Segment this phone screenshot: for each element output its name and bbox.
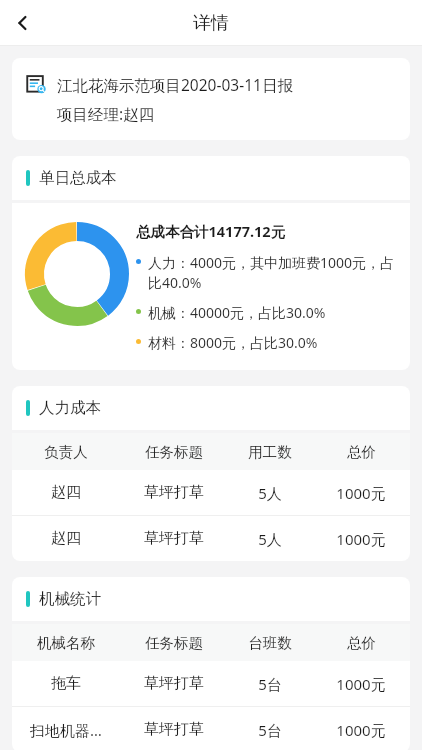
staticText: 1000元 (336, 720, 386, 740)
staticText: 1000元 (336, 529, 386, 549)
staticText: 项目经理:赵四 (57, 103, 155, 124)
staticText: 赵四 (51, 483, 81, 502)
staticText: 5台 (258, 720, 282, 740)
button[interactable]: 人力成本 (12, 386, 410, 430)
button[interactable]: Back (0, 0, 46, 46)
staticText: 总价 (347, 634, 376, 652)
staticText: 机械统计 (39, 589, 101, 609)
staticText: 人力成本 (39, 398, 101, 418)
staticText: 单日总成本 (39, 168, 117, 188)
staticText: 总成本合计14177.12元 (136, 221, 286, 241)
staticText: 总价 (347, 443, 376, 461)
button[interactable]: 拖车 (12, 661, 410, 706)
staticText: 负责人 (44, 443, 88, 461)
button[interactable]: 扫地机器… (12, 707, 410, 750)
staticText: 草坪打草 (144, 720, 204, 739)
staticText: 机械名称 (37, 634, 95, 652)
staticText: 1000元 (336, 674, 386, 694)
button[interactable]: 赵四 (12, 470, 410, 515)
staticText: 拖车 (51, 674, 81, 693)
button[interactable]: 江北花海示范项目2020-03-11日报 (12, 58, 410, 140)
staticText: 机械：40000元，占比30.0% (148, 303, 326, 322)
staticText: 任务标题 (145, 443, 203, 461)
staticText: 台班数 (248, 634, 292, 652)
staticText: 草坪打草 (144, 674, 204, 693)
button[interactable]: 机械统计 (12, 577, 410, 621)
staticText: 扫地机器… (30, 720, 102, 740)
staticText: 赵四 (51, 529, 81, 548)
staticText: 任务标题 (145, 634, 203, 652)
staticText: 草坪打草 (144, 483, 204, 502)
staticText: 江北花海示范项目2020-03-11日报 (57, 74, 293, 95)
staticText: 5台 (258, 674, 282, 694)
staticText: 详情 (193, 12, 229, 35)
staticText: 5人 (258, 483, 282, 503)
button[interactable]: 单日总成本 (12, 156, 410, 200)
staticText: 5人 (258, 529, 282, 549)
staticText: 人力：4000元，其中加班费1000元，占比40.0% (148, 253, 400, 292)
staticText: 用工数 (248, 443, 292, 461)
staticText: 材料：8000元，占比30.0% (148, 333, 318, 352)
button[interactable]: 赵四 (12, 516, 410, 561)
staticText: 草坪打草 (144, 529, 204, 548)
staticText: 1000元 (336, 483, 386, 503)
